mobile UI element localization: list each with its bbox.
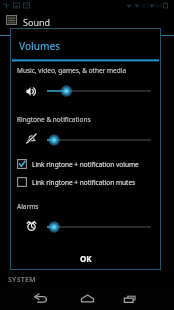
staticText: SYSTEM xyxy=(8,275,36,285)
button[interactable]: Back xyxy=(28,287,52,310)
staticText: Music, video, games, & other media xyxy=(17,66,127,75)
staticText: OK xyxy=(80,253,92,264)
staticText: Link ringtone + notification volume xyxy=(32,160,139,169)
button[interactable]: Link ringtone + notification volume xyxy=(10,156,161,172)
staticText: Alarms xyxy=(17,202,39,211)
button[interactable]: Home xyxy=(75,287,99,310)
staticText: Volumes xyxy=(19,39,61,53)
staticText: 94 xyxy=(155,2,162,10)
staticText: Ringtone & notifications xyxy=(17,115,91,124)
button[interactable]: Recent apps xyxy=(118,287,142,310)
staticText: -67 xyxy=(140,2,149,10)
staticText: Sound xyxy=(23,16,51,28)
staticText: Link ringtone + notification mutes xyxy=(32,178,136,187)
button[interactable]: Link ringtone + notification mutes xyxy=(10,174,161,190)
button[interactable]: OK xyxy=(10,247,161,269)
